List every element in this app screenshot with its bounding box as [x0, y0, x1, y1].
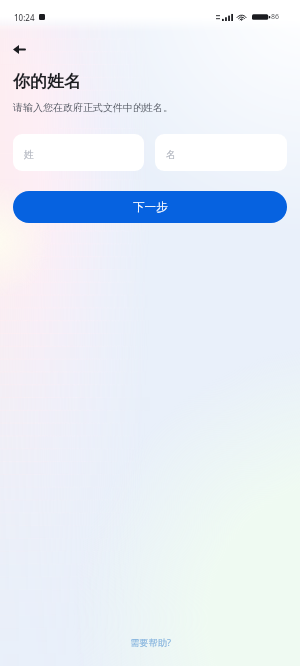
- button[interactable]: 需要帮助?: [130, 636, 171, 649]
- staticText: 86: [271, 12, 280, 22]
- staticText: 姓: [24, 148, 34, 161]
- staticText: 10:24: [14, 12, 35, 23]
- staticText: 名: [166, 148, 176, 161]
- button[interactable]: 姓: [13, 134, 144, 171]
- button[interactable]: Back: [3, 33, 35, 65]
- staticText: 下一步: [133, 200, 168, 214]
- button[interactable]: 名: [155, 134, 287, 171]
- staticText: 你的姓名: [13, 71, 81, 92]
- staticText: 请输入您在政府正式文件中的姓名。: [13, 101, 173, 114]
- button[interactable]: 下一步: [13, 191, 287, 223]
